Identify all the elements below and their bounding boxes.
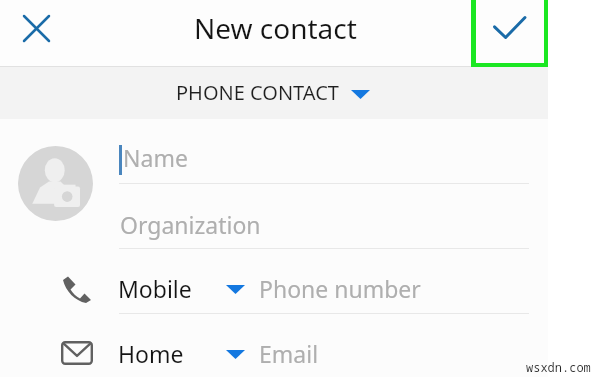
button[interactable]: Close xyxy=(8,0,64,56)
button[interactable]: Add photo xyxy=(18,146,93,221)
staticText: wsxdn.com xyxy=(526,359,591,375)
button[interactable]: Organization xyxy=(119,200,529,249)
other: Phone xyxy=(62,275,91,303)
button[interactable]: Name xyxy=(119,135,529,184)
staticText: Mobile xyxy=(118,273,192,304)
staticText: Email xyxy=(259,338,319,369)
staticText: Phone number xyxy=(259,273,421,304)
button[interactable]: Mobile xyxy=(118,265,248,313)
button[interactable]: Home xyxy=(118,330,248,377)
button[interactable]: Phone number xyxy=(255,265,529,313)
staticText: Name xyxy=(123,142,188,173)
staticText: PHONE CONTACT xyxy=(176,79,339,106)
button[interactable]: Email xyxy=(255,330,529,377)
staticText: New contact xyxy=(194,9,357,47)
button[interactable]: PHONE CONTACT xyxy=(0,67,600,119)
button[interactable]: Save contact xyxy=(476,0,544,63)
staticText: Organization xyxy=(120,209,261,240)
other: Email xyxy=(61,341,93,365)
staticText: Home xyxy=(118,338,184,369)
